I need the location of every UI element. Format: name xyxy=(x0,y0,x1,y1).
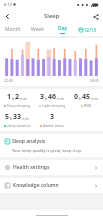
staticText: Week xyxy=(31,26,44,33)
staticText: 3 xyxy=(40,92,45,102)
staticText: min xyxy=(91,96,99,101)
staticText: Light sleeping xyxy=(42,103,66,108)
staticText: min xyxy=(20,96,28,101)
button[interactable]: Share xyxy=(90,11,101,22)
button[interactable]: Knowledge column xyxy=(0,178,103,193)
staticText: h xyxy=(45,96,48,101)
staticText: 1 xyxy=(7,92,12,102)
staticText: Sleep xyxy=(44,12,60,20)
staticText: 46 xyxy=(48,92,57,102)
staticText: 3 xyxy=(50,112,55,122)
staticText: 12/13 xyxy=(84,27,96,33)
button[interactable]: Day xyxy=(50,23,75,36)
staticText: min xyxy=(22,116,30,121)
staticText: Month xyxy=(5,26,21,33)
button[interactable]: Month xyxy=(0,23,25,36)
staticText: Your sleep quality is great, keep it up. xyxy=(12,148,83,153)
staticText: 6:12 xyxy=(4,2,12,7)
staticText: Sleep analysis xyxy=(12,138,46,145)
staticText: REM xyxy=(84,103,92,108)
button[interactable]: Back xyxy=(2,11,13,22)
staticText: min xyxy=(57,96,65,101)
staticText: h xyxy=(10,116,13,121)
staticText: h xyxy=(79,96,82,101)
staticText: Health settings xyxy=(13,164,50,171)
staticText: 45 xyxy=(82,92,91,102)
staticText: Day xyxy=(58,25,68,32)
staticText: Knowledge column xyxy=(13,182,59,189)
staticText: sleep duration xyxy=(7,123,31,128)
staticText: 33 xyxy=(13,112,22,122)
staticText: h xyxy=(12,96,15,101)
button[interactable]: Week xyxy=(25,23,50,36)
staticText: 2 xyxy=(15,92,20,102)
staticText: 0 xyxy=(74,92,79,102)
button[interactable]: 12/13 xyxy=(75,27,100,33)
staticText: 5 xyxy=(5,112,10,122)
staticText: Deep sleeping xyxy=(7,103,31,108)
staticText: 22:00 xyxy=(4,78,13,83)
staticText: Awake times xyxy=(43,123,64,128)
staticText: 08:00 xyxy=(90,78,99,83)
button[interactable]: Health settings xyxy=(0,160,103,175)
button[interactable]: Sleep analysis xyxy=(0,134,103,157)
